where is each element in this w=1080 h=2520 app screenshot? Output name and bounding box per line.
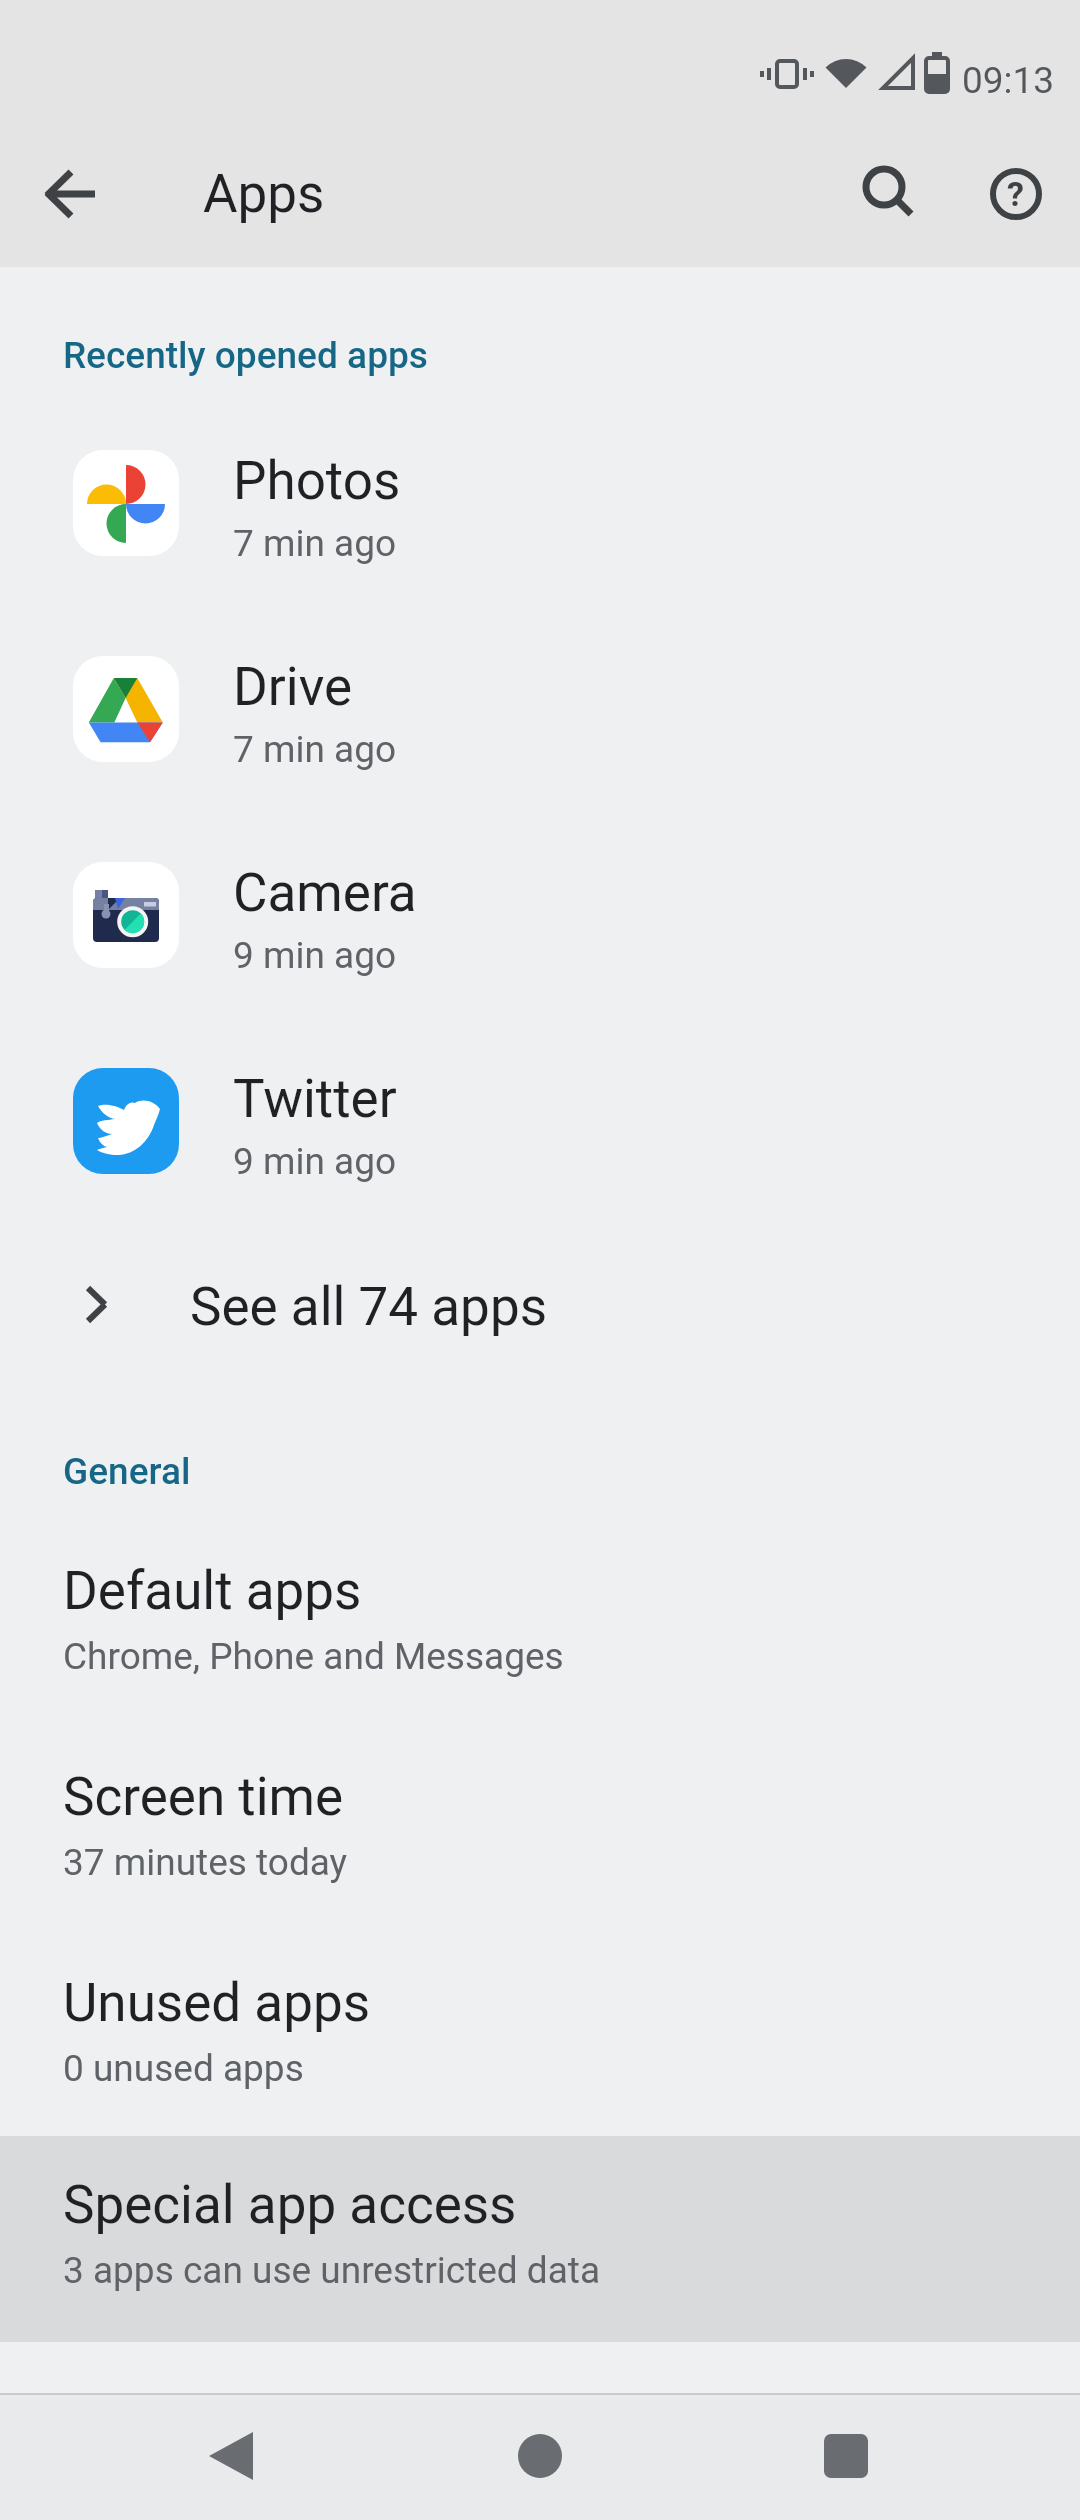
staticText: 37 minutes today: [63, 1841, 348, 1884]
button[interactable]: See all 74 apps: [0, 1240, 1080, 1370]
button[interactable]: Camera: [0, 812, 1080, 1018]
staticText: See all 74 apps: [190, 1276, 547, 1338]
staticText: Chrome, Phone and Messages: [63, 1635, 564, 1678]
button[interactable]: [185, 2410, 275, 2500]
button[interactable]: Special app access: [0, 2136, 1080, 2342]
staticText: 7 min ago: [233, 728, 397, 771]
button[interactable]: [801, 2410, 891, 2500]
staticText: Screen time: [63, 1766, 344, 1828]
staticText: Special app access: [63, 2174, 517, 2236]
staticText: 09:13: [962, 59, 1055, 102]
staticText: ?: [1007, 174, 1024, 214]
staticText: Twitter: [233, 1068, 397, 1130]
button[interactable]: Unused apps: [0, 1934, 1080, 2140]
staticText: Camera: [233, 862, 417, 924]
staticText: Apps: [203, 163, 325, 225]
button[interactable]: Default apps: [0, 1522, 1080, 1728]
button[interactable]: [856, 160, 924, 228]
staticText: Recently opened apps: [63, 334, 428, 377]
staticText: 7 min ago: [233, 522, 397, 565]
staticText: 9 min ago: [233, 1140, 397, 1183]
button[interactable]: Drive: [0, 606, 1080, 812]
button[interactable]: Photos: [0, 400, 1080, 606]
staticText: Drive: [233, 656, 353, 718]
staticText: Photos: [233, 450, 401, 512]
button[interactable]: Twitter: [0, 1018, 1080, 1224]
button[interactable]: ?: [982, 160, 1050, 228]
button[interactable]: Screen time: [0, 1728, 1080, 1934]
staticText: 9 min ago: [233, 934, 397, 977]
staticText: Unused apps: [63, 1972, 371, 2034]
staticText: 3 apps can use unrestricted data: [63, 2249, 601, 2292]
staticText: General: [63, 1450, 191, 1493]
staticText: 0 unused apps: [63, 2047, 304, 2090]
button[interactable]: [37, 160, 105, 228]
staticText: Default apps: [63, 1560, 362, 1622]
button[interactable]: [495, 2410, 585, 2500]
